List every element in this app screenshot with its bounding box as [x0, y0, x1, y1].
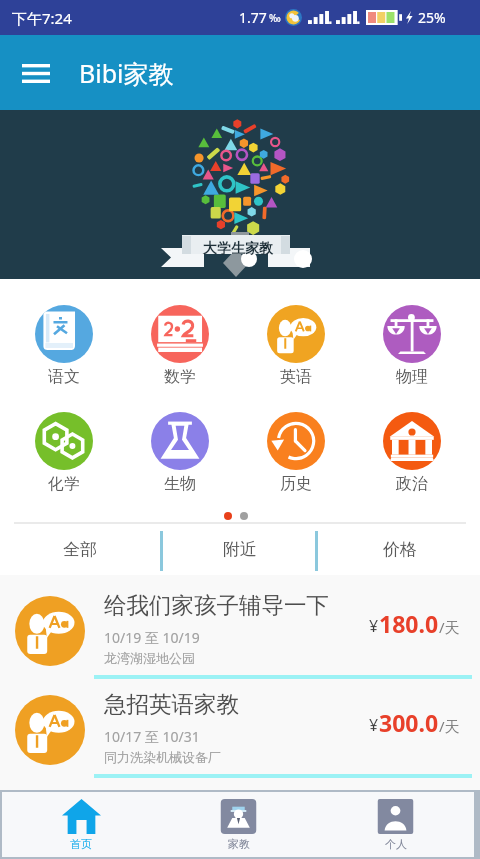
- staticText: /天: [439, 617, 460, 637]
- staticText: 同力洗染机械设备厂: [104, 749, 221, 765]
- button[interactable]: 价格: [320, 524, 480, 575]
- staticText: 个人: [385, 837, 407, 851]
- staticText: 25%: [418, 8, 446, 27]
- button[interactable]: 急招英语家教: [0, 674, 480, 773]
- staticText: 大学生家教: [203, 240, 273, 258]
- staticText: /天: [439, 716, 460, 736]
- staticText: 龙湾湖湿地公园: [104, 650, 195, 666]
- button[interactable]: 全部: [0, 524, 160, 575]
- button[interactable]: 家教: [160, 792, 317, 857]
- button[interactable]: 化学: [6, 412, 122, 494]
- staticText: 急招英语家教: [104, 690, 239, 718]
- staticText: Bibi家教: [79, 56, 174, 90]
- staticText: 10/17 至 10/31: [104, 727, 200, 746]
- button[interactable]: 英语: [238, 305, 354, 387]
- staticText: 物理: [396, 367, 428, 387]
- staticText: 300.0: [379, 707, 439, 738]
- button[interactable]: 个人: [317, 792, 474, 857]
- button[interactable]: Menu: [12, 49, 60, 97]
- staticText: 10/19 至 10/19: [104, 628, 200, 647]
- staticText: 1.77: [239, 8, 267, 27]
- staticText: 家教: [228, 837, 250, 851]
- button[interactable]: 历史: [238, 412, 354, 494]
- staticText: 附近: [223, 539, 257, 560]
- button[interactable]: 附近: [160, 524, 320, 575]
- button[interactable]: 政治: [354, 412, 470, 494]
- button[interactable]: 物理: [354, 305, 470, 387]
- staticText: 180.0: [379, 608, 439, 639]
- staticText: 生物: [164, 474, 196, 494]
- staticText: 给我们家孩子辅导一下: [104, 591, 329, 619]
- staticText: 全部: [63, 539, 97, 560]
- button[interactable]: 生物: [122, 412, 238, 494]
- staticText: ¥: [369, 615, 379, 637]
- staticText: 英语: [280, 367, 312, 387]
- staticText: 语文: [48, 367, 80, 387]
- staticText: 首页: [70, 837, 92, 851]
- staticText: ‰: [269, 11, 281, 25]
- button[interactable]: 数学: [122, 305, 238, 387]
- staticText: 政治: [396, 474, 428, 494]
- button[interactable]: 语文: [6, 305, 122, 387]
- staticText: 历史: [280, 474, 312, 494]
- staticText: 化学: [48, 474, 80, 494]
- button[interactable]: 首页: [2, 792, 160, 857]
- staticText: ¥: [369, 714, 379, 736]
- staticText: 下午7:24: [12, 8, 72, 28]
- staticText: 数学: [164, 367, 196, 387]
- button[interactable]: 给我们家孩子辅导一下: [0, 575, 480, 674]
- staticText: 价格: [383, 539, 417, 560]
